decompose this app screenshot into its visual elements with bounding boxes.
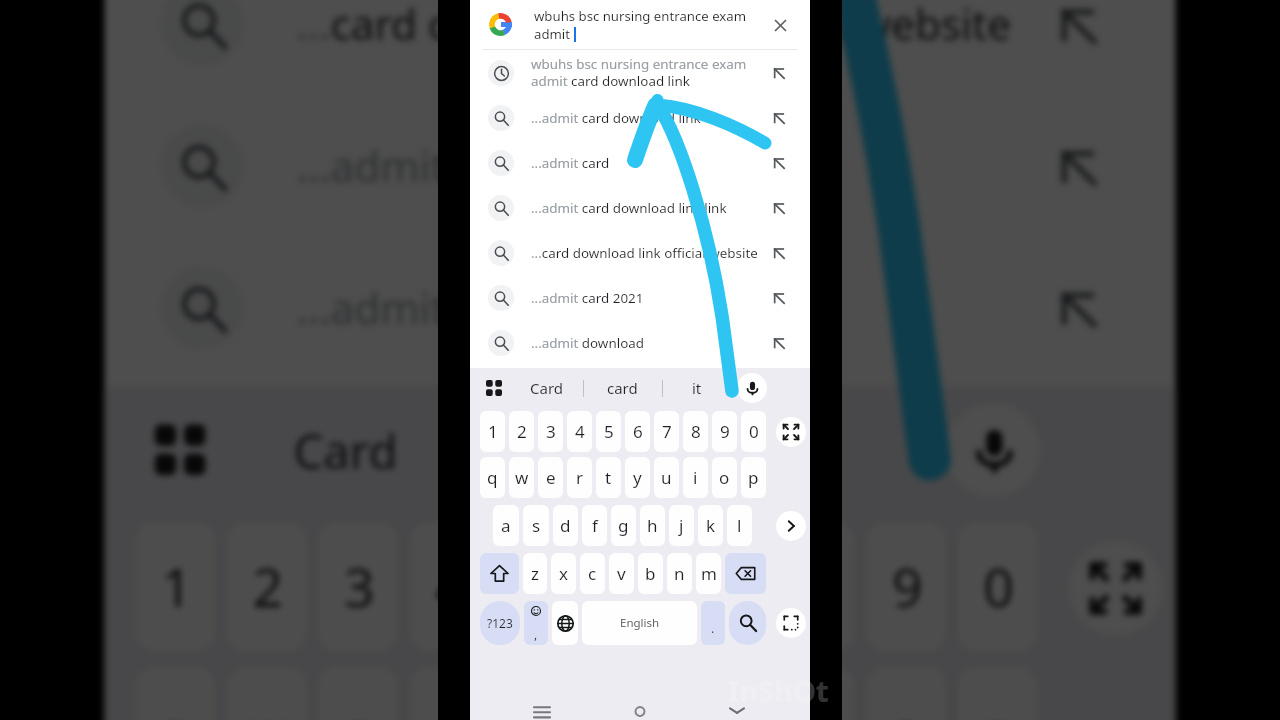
button[interactable]: ...card download link official website [470,230,810,275]
button[interactable]: Use this suggestion [1031,119,1125,213]
button[interactable]: 2 [509,411,534,452]
button[interactable]: v [609,553,634,594]
button[interactable]: u [654,457,679,498]
button[interactable]: h [640,505,665,546]
button[interactable]: English [582,601,697,645]
button[interactable]: g [611,505,636,546]
button[interactable]: Voice input [945,402,1040,497]
button[interactable]: n [667,553,692,594]
button[interactable]: ...admit card [470,140,810,185]
button[interactable]: o [712,457,737,498]
button[interactable]: Use this suggestion [764,283,794,313]
button[interactable]: Card [517,368,577,408]
button[interactable]: Use this suggestion [764,238,794,268]
button[interactable]: Use this suggestion [764,58,794,88]
button[interactable]: 1 [480,411,505,452]
button[interactable]: m [696,553,721,594]
button[interactable]: 0 [958,522,1037,651]
button[interactable]: Use this suggestion [1031,261,1125,355]
button[interactable]: j [669,505,694,546]
button[interactable]: t [501,667,580,720]
button[interactable]: ...card download link official website [104,0,1175,94]
button[interactable]: Change language [552,601,578,645]
button[interactable]: Use this suggestion [764,103,794,133]
button[interactable]: y [593,667,671,720]
button[interactable]: p [741,457,766,498]
button[interactable]: ?123 [480,601,520,645]
button[interactable]: Period [701,601,725,645]
button[interactable]: b [638,553,663,594]
button[interactable]: Use this suggestion [764,193,794,223]
button[interactable]: Voice input [737,373,767,403]
button[interactable]: Google [483,7,518,42]
button[interactable]: f [582,505,607,546]
button[interactable]: ...admit card download link [470,95,810,140]
button[interactable]: Home [624,700,656,720]
button[interactable]: Resize keyboard [1068,541,1163,636]
button[interactable]: it [667,368,727,408]
button[interactable]: Backspace [725,553,766,594]
button[interactable]: z [523,553,547,594]
button[interactable]: Keyboard themes [481,375,507,401]
button[interactable]: d [553,505,578,546]
button[interactable]: i [683,457,708,498]
button[interactable]: a [493,505,519,546]
button[interactable]: 3 [319,522,397,651]
button[interactable]: Select text [776,608,806,638]
button[interactable]: card [592,368,652,408]
button[interactable]: Shift [480,553,519,594]
button[interactable]: Recents [526,700,558,720]
button[interactable]: Keyboard themes [139,409,221,491]
button[interactable]: 3 [538,411,563,452]
button[interactable]: 6 [625,411,650,452]
button[interactable]: 5 [501,522,580,651]
button[interactable]: 8 [775,522,854,651]
button[interactable]: Use this suggestion [764,328,794,358]
button[interactable]: 4 [567,411,592,452]
button[interactable]: it [725,387,914,513]
button[interactable]: Resize keyboard [776,417,806,447]
button[interactable]: 8 [683,411,708,452]
button[interactable]: ...admit card 2021 [470,275,810,320]
button[interactable]: card [489,387,678,513]
button[interactable]: t [596,457,621,498]
button[interactable]: 4 [410,522,489,651]
button[interactable]: Use this suggestion [1031,0,1125,72]
button[interactable]: r [567,457,592,498]
button[interactable]: 9 [712,411,737,452]
button[interactable]: Emoji [524,601,548,645]
button[interactable]: y [625,457,650,498]
button[interactable]: s [523,505,549,546]
button[interactable]: x [551,553,576,594]
button[interactable]: w [509,457,534,498]
button[interactable]: ...admit download [470,320,810,365]
button[interactable]: 5 [596,411,621,452]
button[interactable]: wbuhs bsc nursing entrance exam [534,7,765,43]
button[interactable]: 1 [136,522,215,651]
button[interactable]: ...admit card download link link [470,185,810,230]
button[interactable]: 7 [654,411,679,452]
button[interactable]: c [580,553,605,594]
button[interactable]: 7 [684,522,763,651]
button[interactable]: wbuhs bsc nursing entrance exam admit ca… [470,50,810,95]
button[interactable]: 6 [593,522,671,651]
button[interactable]: Clear search [765,10,795,40]
button[interactable]: u [684,667,763,720]
button[interactable]: i [775,667,854,720]
button[interactable]: Use this suggestion [764,148,794,178]
button[interactable]: Card [252,387,441,513]
button[interactable]: ...admit card 2021 [104,94,1175,236]
button[interactable]: Search [729,601,766,645]
button[interactable]: r [410,667,489,720]
button[interactable]: e [538,457,563,498]
button[interactable]: 2 [227,522,306,651]
button[interactable]: Next field [776,511,806,541]
button[interactable]: k [698,505,723,546]
button[interactable]: l [727,505,752,546]
button[interactable]: q [480,457,505,498]
button[interactable]: 9 [867,522,946,651]
